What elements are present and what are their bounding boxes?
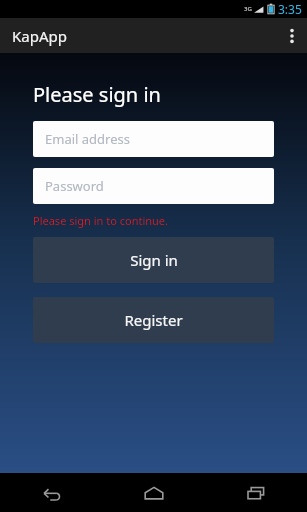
staticText: Password [45,177,104,195]
staticText: Register [124,310,183,330]
button[interactable]: Sign in [33,237,274,283]
button[interactable]: More options [277,18,307,53]
button[interactable]: Recent apps [205,473,307,512]
staticText: 3:35 [278,1,302,17]
button[interactable]: Back [0,473,103,512]
staticText: Email address [45,130,130,148]
button[interactable]: Password [33,168,274,204]
button[interactable]: Home [103,473,205,512]
staticText: Please sign in to continue. [33,213,169,228]
staticText: Please sign in [33,81,161,108]
staticText: Sign in [130,250,178,270]
button[interactable]: Email address [33,121,274,157]
staticText: 3G [244,5,252,13]
button[interactable]: Register [33,297,274,343]
staticText: KapApp [12,26,67,46]
